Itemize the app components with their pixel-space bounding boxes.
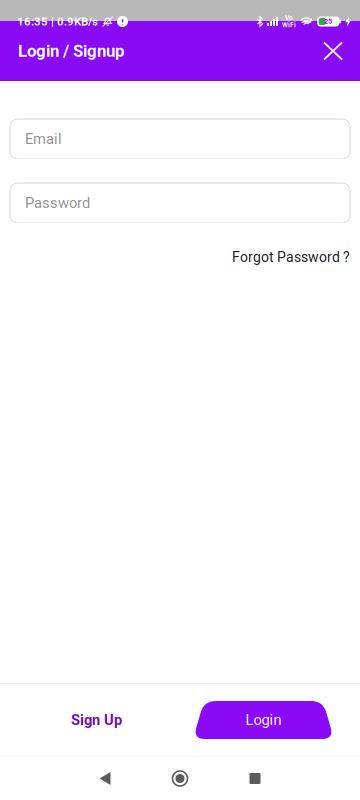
staticText: 16:35 | 0.9KB/s	[17, 15, 98, 28]
button[interactable]: Home	[142, 757, 217, 800]
button[interactable]: Email	[10, 119, 350, 159]
staticText: Password	[25, 194, 90, 212]
staticText: Forgot Password ?	[232, 249, 350, 265]
staticText: 25	[324, 18, 332, 25]
staticText: Login / Signup	[18, 41, 124, 61]
staticText: Vo	[285, 14, 293, 22]
button[interactable]: Password	[10, 183, 350, 223]
staticText: Email	[25, 130, 62, 148]
button[interactable]: Back	[67, 757, 142, 800]
staticText: Sign Up	[71, 711, 122, 729]
button[interactable]: Sign Up	[0, 684, 193, 756]
staticText: WiFi	[282, 21, 296, 29]
button[interactable]: Login	[193, 684, 334, 756]
staticText: Login	[245, 711, 281, 729]
button[interactable]: Close	[312, 30, 354, 72]
button[interactable]: Recent apps	[217, 757, 292, 800]
button[interactable]: Forgot Password ?	[232, 247, 350, 267]
